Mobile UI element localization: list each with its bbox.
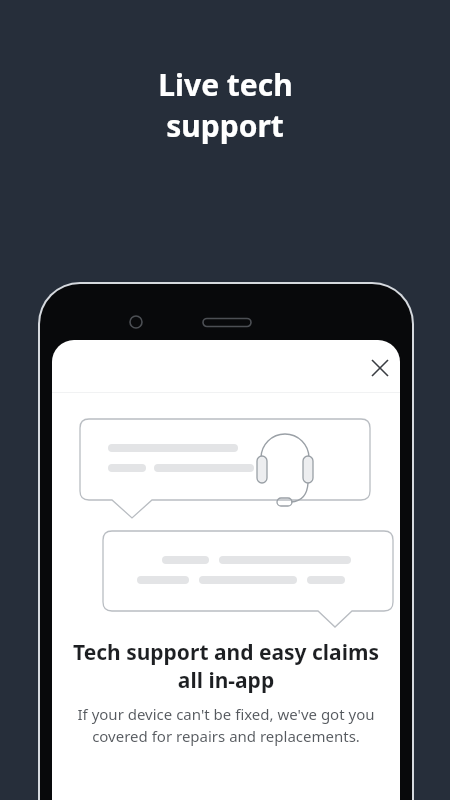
staticText: Tech support and easy claims all in-app xyxy=(62,638,390,694)
staticText: support xyxy=(166,105,284,146)
staticText: Live tech xyxy=(158,64,293,105)
staticText: If your device can't be fixed, we've got… xyxy=(62,704,390,747)
button[interactable]: Close xyxy=(358,346,400,390)
